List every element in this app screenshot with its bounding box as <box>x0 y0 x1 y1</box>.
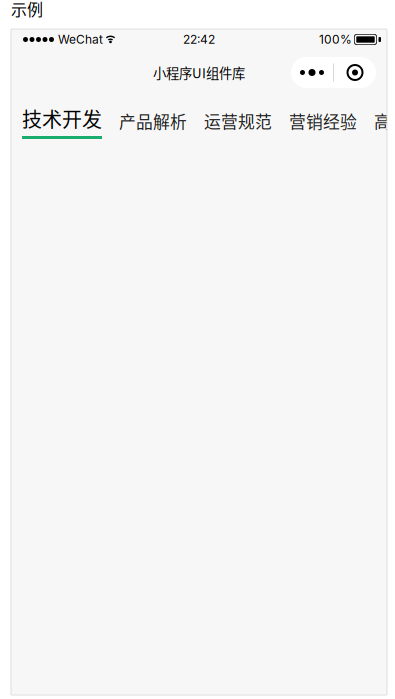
button[interactable]: 运营规范 <box>204 113 272 133</box>
staticText: 营销经验 <box>289 109 357 133</box>
staticText: 22:42 <box>183 32 215 47</box>
staticText: 产品解析 <box>119 109 187 133</box>
button[interactable]: 技术开发 <box>22 113 102 139</box>
staticText: 运营规范 <box>204 109 272 133</box>
staticText: 高端定制 <box>374 109 395 133</box>
staticText: 小程序UI组件库 <box>153 63 245 82</box>
button[interactable]: 高端定制 <box>374 113 395 133</box>
button[interactable]: 营销经验 <box>289 113 357 133</box>
button[interactable]: 产品解析 <box>119 113 187 133</box>
staticText: WeChat <box>58 32 103 47</box>
staticText: 100% <box>319 32 352 47</box>
staticText: 技术开发 <box>22 104 102 133</box>
button[interactable]: More options and close mini program <box>291 57 376 88</box>
staticText: 示例 <box>11 0 43 20</box>
